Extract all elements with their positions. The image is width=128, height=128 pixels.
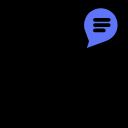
button[interactable]: Messages: [0, 0, 128, 128]
